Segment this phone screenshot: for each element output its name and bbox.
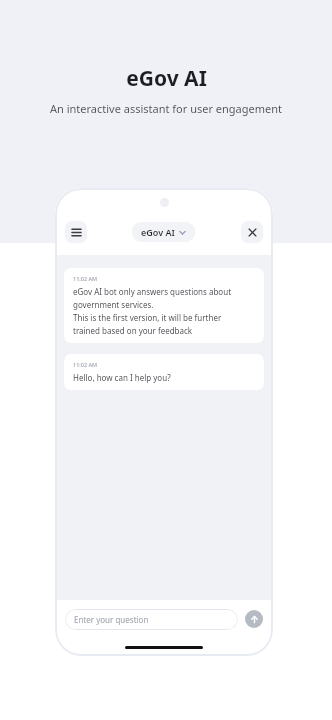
button[interactable]: 11:02 AM	[64, 354, 264, 390]
staticText: government services.	[73, 299, 154, 310]
staticText: eGov AI bot only answers questions about	[73, 286, 232, 297]
staticText: Hello, how can I help you?	[73, 372, 171, 383]
staticText: eGov AI	[126, 64, 207, 93]
button[interactable]: Enter your question	[65, 609, 238, 630]
staticText: trained based on your feedback	[73, 325, 193, 336]
button[interactable]: Close	[241, 221, 263, 243]
staticText: 11:02 AM	[73, 275, 98, 282]
button[interactable]: 11:02 AM	[64, 268, 264, 343]
staticText: 11:02 AM	[73, 361, 98, 368]
staticText: Enter your question	[74, 614, 149, 625]
staticText: This is the first version, it will be fu…	[73, 312, 222, 323]
staticText: eGov AI	[141, 226, 175, 238]
button[interactable]: eGov AI	[132, 222, 195, 242]
button[interactable]: Menu	[65, 221, 87, 243]
staticText: An interactive assistant for user engage…	[50, 101, 282, 116]
button[interactable]: Send	[245, 610, 263, 628]
